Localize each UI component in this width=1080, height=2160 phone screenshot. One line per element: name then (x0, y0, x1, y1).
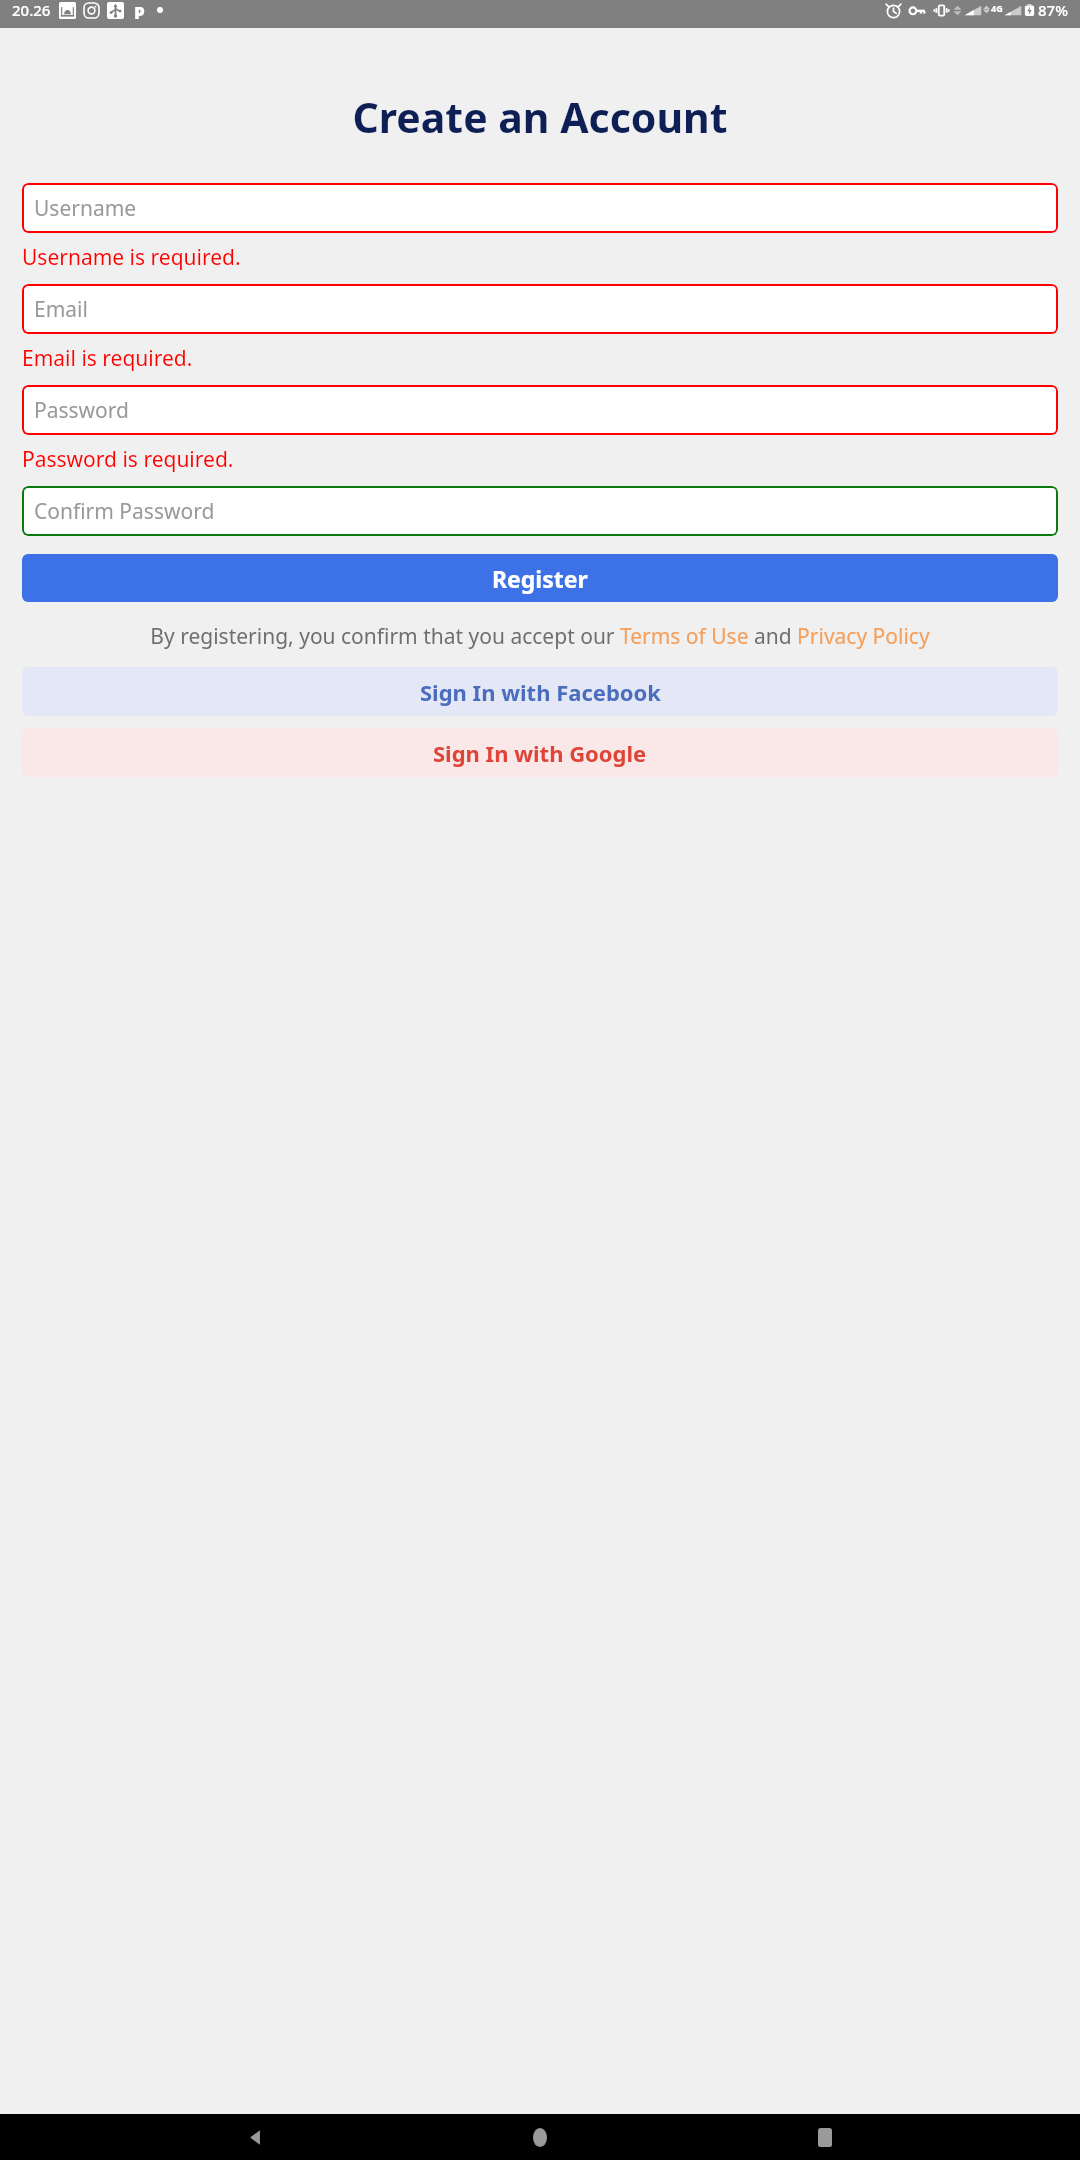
staticText: Confirm Password (34, 497, 215, 526)
staticText: Sign In with Facebook (420, 677, 661, 707)
button[interactable]: Register (22, 554, 1058, 602)
staticText: By registering, you confirm that you acc… (150, 622, 930, 651)
staticText: Username (34, 194, 137, 223)
button[interactable]: Email (22, 284, 1058, 334)
staticText: 87% (1038, 0, 1068, 20)
staticText: Register (492, 563, 588, 594)
staticText: Username is required. (22, 243, 1080, 272)
button[interactable]: Sign In with Facebook (22, 667, 1058, 716)
button[interactable]: Home (510, 2114, 570, 2160)
staticText: Password is required. (22, 445, 1080, 474)
button[interactable]: Recent apps (795, 2114, 855, 2160)
staticText: P (134, 2, 145, 19)
button[interactable]: Sign In with Google (22, 728, 1058, 777)
button[interactable]: Back (225, 2114, 285, 2160)
staticText: Password (34, 396, 129, 425)
staticText: Email (34, 295, 88, 324)
staticText: 4G (991, 2, 1003, 14)
button[interactable]: Password (22, 385, 1058, 435)
staticText: Email is required. (22, 344, 1080, 373)
staticText: 20.26 (12, 0, 51, 20)
staticText: Sign In with Google (433, 738, 647, 768)
button[interactable]: By registering, you confirm that you acc… (34, 622, 1046, 651)
button[interactable]: Username (22, 183, 1058, 233)
button[interactable]: Confirm Password (22, 486, 1058, 536)
staticText: Create an Account (0, 89, 1080, 145)
